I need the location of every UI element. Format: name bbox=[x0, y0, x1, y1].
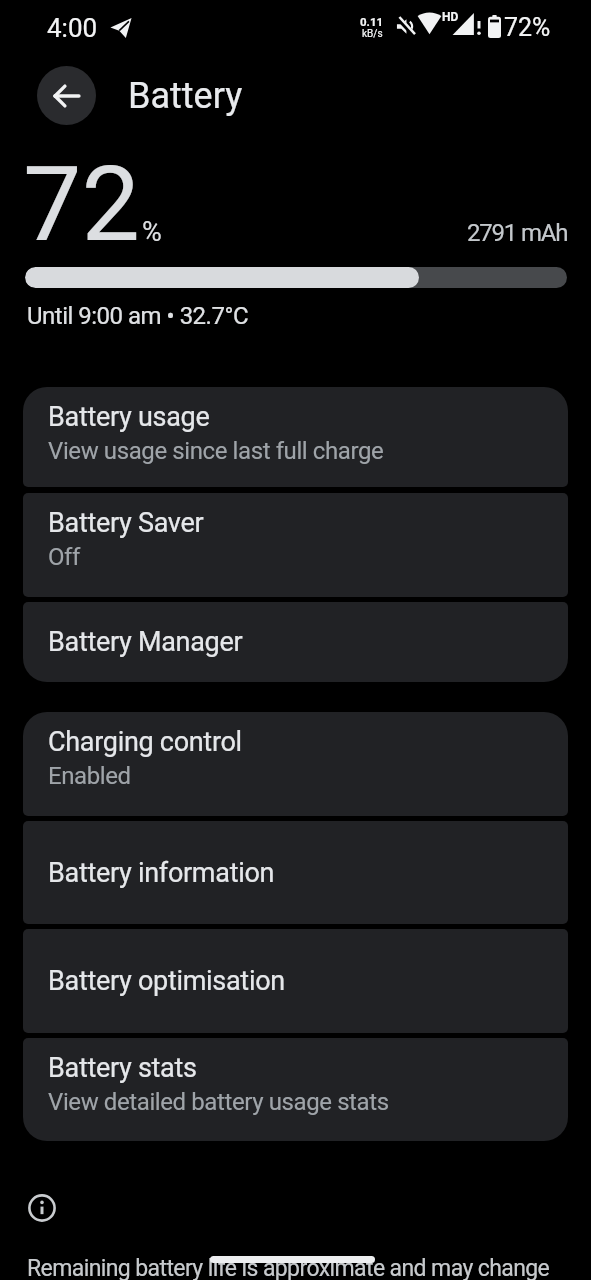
button[interactable]: Battery Manager bbox=[23, 602, 568, 682]
staticText: % bbox=[142, 216, 162, 248]
staticText: Battery Saver bbox=[48, 507, 204, 539]
staticText: Battery stats bbox=[48, 1052, 197, 1084]
staticText: kB/s bbox=[362, 28, 383, 40]
button[interactable]: Charging control bbox=[23, 712, 568, 816]
staticText: 72 bbox=[23, 144, 140, 266]
staticText: Charging control bbox=[48, 726, 242, 758]
staticText: Off bbox=[48, 543, 80, 571]
staticText: 2791 mAh bbox=[467, 219, 568, 247]
staticText: 4:00 bbox=[47, 13, 98, 43]
staticText: Battery Manager bbox=[48, 626, 243, 658]
staticText: 0.11 bbox=[360, 15, 384, 28]
staticText: Battery usage bbox=[48, 401, 210, 433]
staticText: Battery information bbox=[48, 857, 275, 889]
staticText: View usage since last full charge bbox=[48, 437, 384, 465]
staticText: 72% bbox=[504, 13, 551, 42]
staticText: Battery bbox=[128, 75, 243, 117]
button[interactable] bbox=[37, 66, 96, 125]
staticText: View detailed battery usage stats bbox=[48, 1088, 389, 1116]
staticText: HD bbox=[442, 10, 459, 24]
button[interactable]: Battery information bbox=[23, 821, 568, 924]
staticText: Remaining battery life is approximate an… bbox=[27, 1255, 550, 1280]
button[interactable]: Battery usage bbox=[23, 387, 568, 487]
staticText: Until 9:00 am • 32.7°C bbox=[27, 302, 249, 330]
staticText: Battery optimisation bbox=[48, 965, 285, 997]
button[interactable]: Battery optimisation bbox=[23, 929, 568, 1033]
button[interactable]: Battery Saver bbox=[23, 493, 568, 597]
button[interactable]: Battery stats bbox=[23, 1038, 568, 1141]
staticText: Enabled bbox=[48, 762, 131, 790]
